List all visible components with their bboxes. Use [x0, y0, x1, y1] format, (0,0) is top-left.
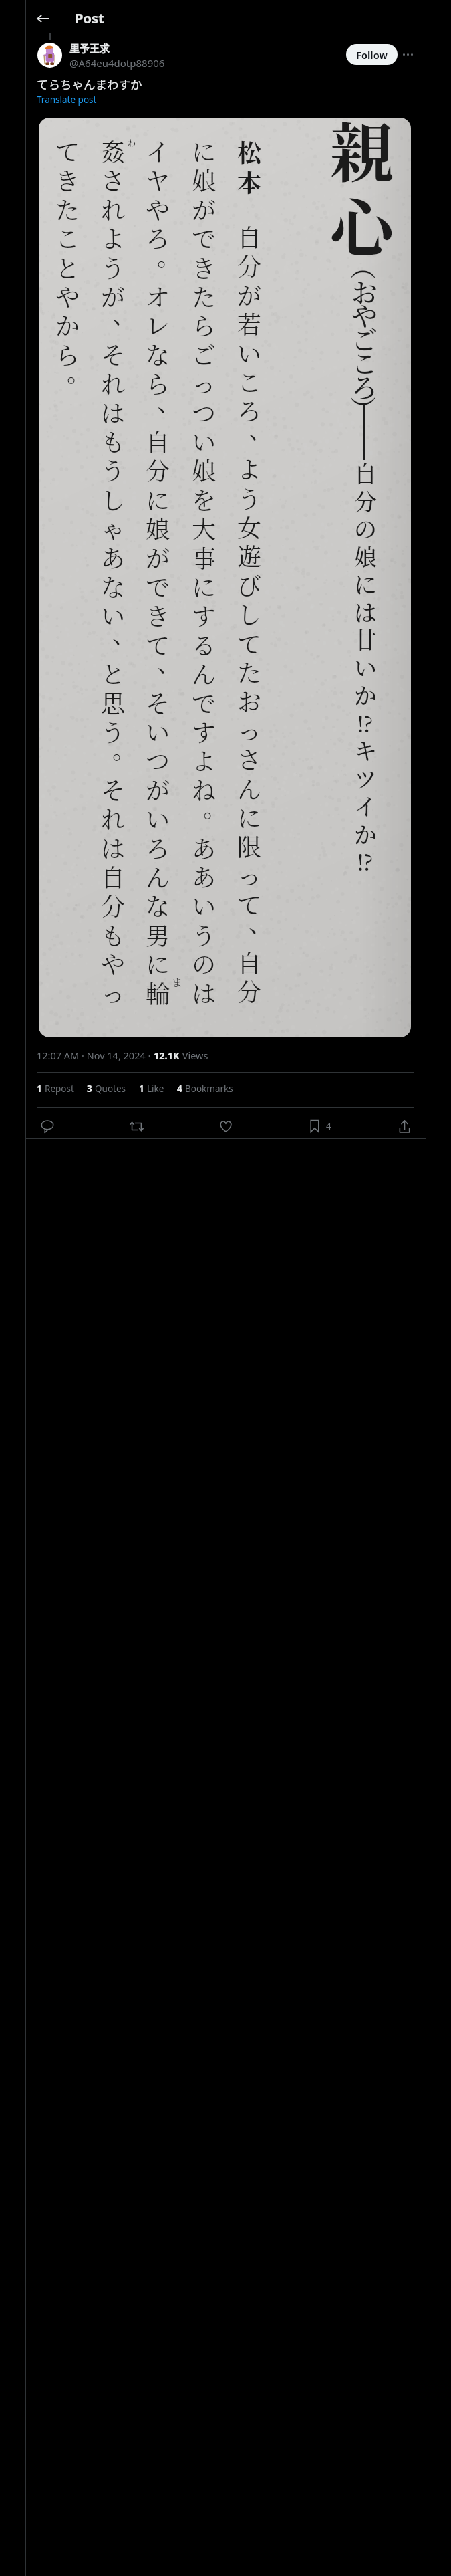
staticText: ろ: [146, 221, 170, 255]
staticText: 4: [177, 1083, 182, 1095]
staticText: が: [237, 278, 262, 312]
staticText: う: [101, 250, 126, 285]
staticText: Follow: [356, 48, 388, 62]
staticText: あ: [192, 859, 216, 894]
staticText: に: [146, 946, 170, 981]
staticText: 娘: [192, 453, 216, 488]
staticText: よ: [192, 743, 216, 778]
button[interactable]: 1: [139, 1083, 164, 1095]
staticText: ゎ: [126, 134, 138, 149]
staticText: あ: [192, 831, 216, 865]
staticText: を: [192, 482, 216, 517]
staticText: に: [192, 569, 216, 604]
staticText: っ: [101, 976, 126, 1010]
button[interactable]: Post image: [39, 118, 411, 1037]
staticText: 、: [157, 384, 182, 419]
staticText: て: [237, 626, 262, 661]
staticText: 、: [112, 296, 137, 331]
staticText: そ: [101, 772, 126, 807]
staticText: 分: [146, 453, 170, 488]
staticText: の: [354, 512, 377, 544]
staticText: 甘: [354, 623, 377, 655]
staticText: 親: [330, 118, 394, 195]
staticText: イ: [354, 789, 377, 822]
staticText: て: [55, 134, 80, 169]
staticText: と: [101, 656, 126, 691]
staticText: る: [192, 627, 216, 662]
staticText: 男: [146, 918, 170, 952]
staticText: （: [346, 253, 384, 280]
staticText: そ: [146, 685, 170, 720]
staticText: 自: [237, 219, 262, 254]
staticText: Bookmarks: [185, 1083, 233, 1095]
staticText: 12.1K: [154, 1049, 180, 1062]
staticText: 姦: [101, 134, 126, 169]
staticText: が: [101, 279, 126, 314]
staticText: れ: [101, 801, 126, 836]
staticText: ご: [351, 320, 378, 357]
staticText: 1: [139, 1083, 144, 1095]
staticText: 、: [157, 645, 182, 679]
staticText: も: [101, 918, 126, 952]
button[interactable]: Reply: [39, 1117, 56, 1135]
staticText: 分: [237, 974, 262, 1008]
staticText: ら: [55, 337, 80, 372]
staticText: 分: [354, 484, 377, 517]
staticText: の: [192, 946, 216, 981]
staticText: ね: [192, 772, 216, 807]
staticText: 分: [101, 888, 126, 923]
staticText: か: [55, 308, 80, 342]
staticText: な: [101, 569, 126, 604]
staticText: で: [192, 685, 216, 720]
staticText: っ: [237, 858, 262, 893]
staticText: 。: [203, 790, 228, 825]
staticText: や: [55, 279, 80, 314]
staticText: ろ: [146, 831, 170, 865]
staticText: 事: [192, 540, 216, 575]
staticText: す: [192, 598, 216, 633]
button[interactable]: Back: [31, 7, 54, 30]
staticText: て: [237, 887, 262, 922]
staticText: てらちゃんまわすか: [37, 76, 142, 92]
staticText: Like: [147, 1083, 164, 1095]
staticText: 本: [237, 165, 262, 199]
button[interactable]: Repost: [128, 1117, 145, 1135]
staticText: う: [192, 918, 216, 952]
staticText: Translate post: [37, 94, 97, 106]
staticText: が: [146, 540, 170, 575]
staticText: ゃ: [101, 511, 126, 546]
button[interactable]: Like: [217, 1117, 235, 1135]
staticText: ⁉: [357, 706, 373, 739]
staticText: ろ: [237, 393, 262, 428]
staticText: こ: [237, 364, 262, 399]
staticText: こ: [55, 221, 80, 255]
staticText: あ: [101, 540, 126, 575]
staticText: う: [101, 453, 126, 488]
button[interactable]: Follow: [346, 44, 398, 65]
button[interactable]: 4: [177, 1083, 233, 1095]
button[interactable]: Translate post: [37, 94, 97, 106]
staticText: い: [192, 424, 216, 459]
staticText: よ: [237, 451, 262, 486]
staticText: Post: [75, 9, 104, 27]
staticText: き: [55, 163, 80, 197]
staticText: や: [146, 192, 170, 227]
staticText: が: [192, 192, 216, 227]
button[interactable]: Share: [396, 1117, 413, 1135]
staticText: に: [237, 800, 262, 835]
button[interactable]: Bookmark: [306, 1117, 331, 1135]
staticText: っ: [192, 366, 216, 401]
staticText: ⁉: [357, 845, 373, 877]
button[interactable]: Profile picture: [37, 43, 62, 68]
staticText: Views: [180, 1049, 208, 1062]
staticText: た: [192, 279, 216, 314]
staticText: し: [237, 597, 262, 631]
button[interactable]: 1: [37, 1083, 74, 1095]
staticText: た: [55, 192, 80, 227]
staticText: ら: [192, 308, 216, 342]
staticText: 心: [330, 179, 394, 270]
button[interactable]: 3: [87, 1083, 126, 1095]
staticText: し: [101, 482, 126, 517]
staticText: 娘: [146, 511, 170, 546]
button[interactable]: More options: [398, 44, 418, 65]
